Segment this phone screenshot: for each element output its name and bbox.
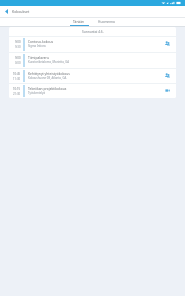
button[interactable]: 9:00 [9,53,176,68]
staticText: 10:45 [13,72,21,76]
button[interactable]: Attendees [161,37,174,52]
staticText: Tänään [73,20,84,24]
staticText: Työskentelyä [28,91,46,95]
staticText: Kokoukset [12,9,30,14]
staticText: 21:30 [13,92,21,96]
staticText: 9:00 [15,56,21,60]
staticText: Kehittynyt yhteistyökokous [28,71,70,75]
button[interactable]: Tänään [68,18,89,26]
staticText: Kuratoriketalomo, Marietta, GA [28,60,70,64]
staticText: Huomenna [98,20,115,24]
button[interactable]: Attendees [161,84,174,98]
staticText: Tekniikan projektikokous [28,86,67,90]
button[interactable]: Huomenna [95,18,118,25]
button[interactable]: 10:45 [9,69,176,83]
staticText: 0:00 [15,61,21,65]
staticText: 9:30 [15,45,21,49]
staticText: Sigma Intiora [28,44,46,48]
staticText: Sunnuntai 4.6. [82,30,104,34]
staticText: Tiimipalaveru [28,55,49,59]
button[interactable]: 10:15 [9,84,176,98]
staticText: Kokoushuone 08, Atlanta, GA [28,76,67,80]
staticText: 11:30 [13,77,21,81]
button[interactable]: Attendees [161,69,174,83]
staticText: 10:15 [13,87,21,91]
staticText: Contoso-kokous [28,39,54,43]
button[interactable]: Back [0,6,12,17]
staticText: 9:00 [15,40,21,44]
button[interactable]: 9:00 [9,37,176,52]
